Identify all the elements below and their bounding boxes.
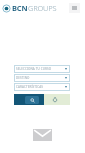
button[interactable]: Contacto [33, 129, 52, 141]
staticText: BCN [12, 3, 28, 13]
button[interactable]: Buscar [14, 94, 44, 105]
button[interactable]: SELECCIONA TU CURSO [14, 65, 70, 73]
staticText: GROUPS [28, 3, 57, 13]
button[interactable]: Menu [69, 3, 80, 13]
button[interactable]: DESTINO [14, 74, 70, 82]
staticText: DESTINO [16, 76, 30, 80]
button[interactable]: CARACTERÍSTICAS [14, 83, 70, 91]
button[interactable]: BCN Groups [2, 3, 57, 13]
staticText: CARACTERÍSTICAS [16, 85, 43, 89]
button[interactable]: Reiniciar [44, 94, 70, 105]
staticText: SELECCIONA TU CURSO [16, 67, 52, 71]
